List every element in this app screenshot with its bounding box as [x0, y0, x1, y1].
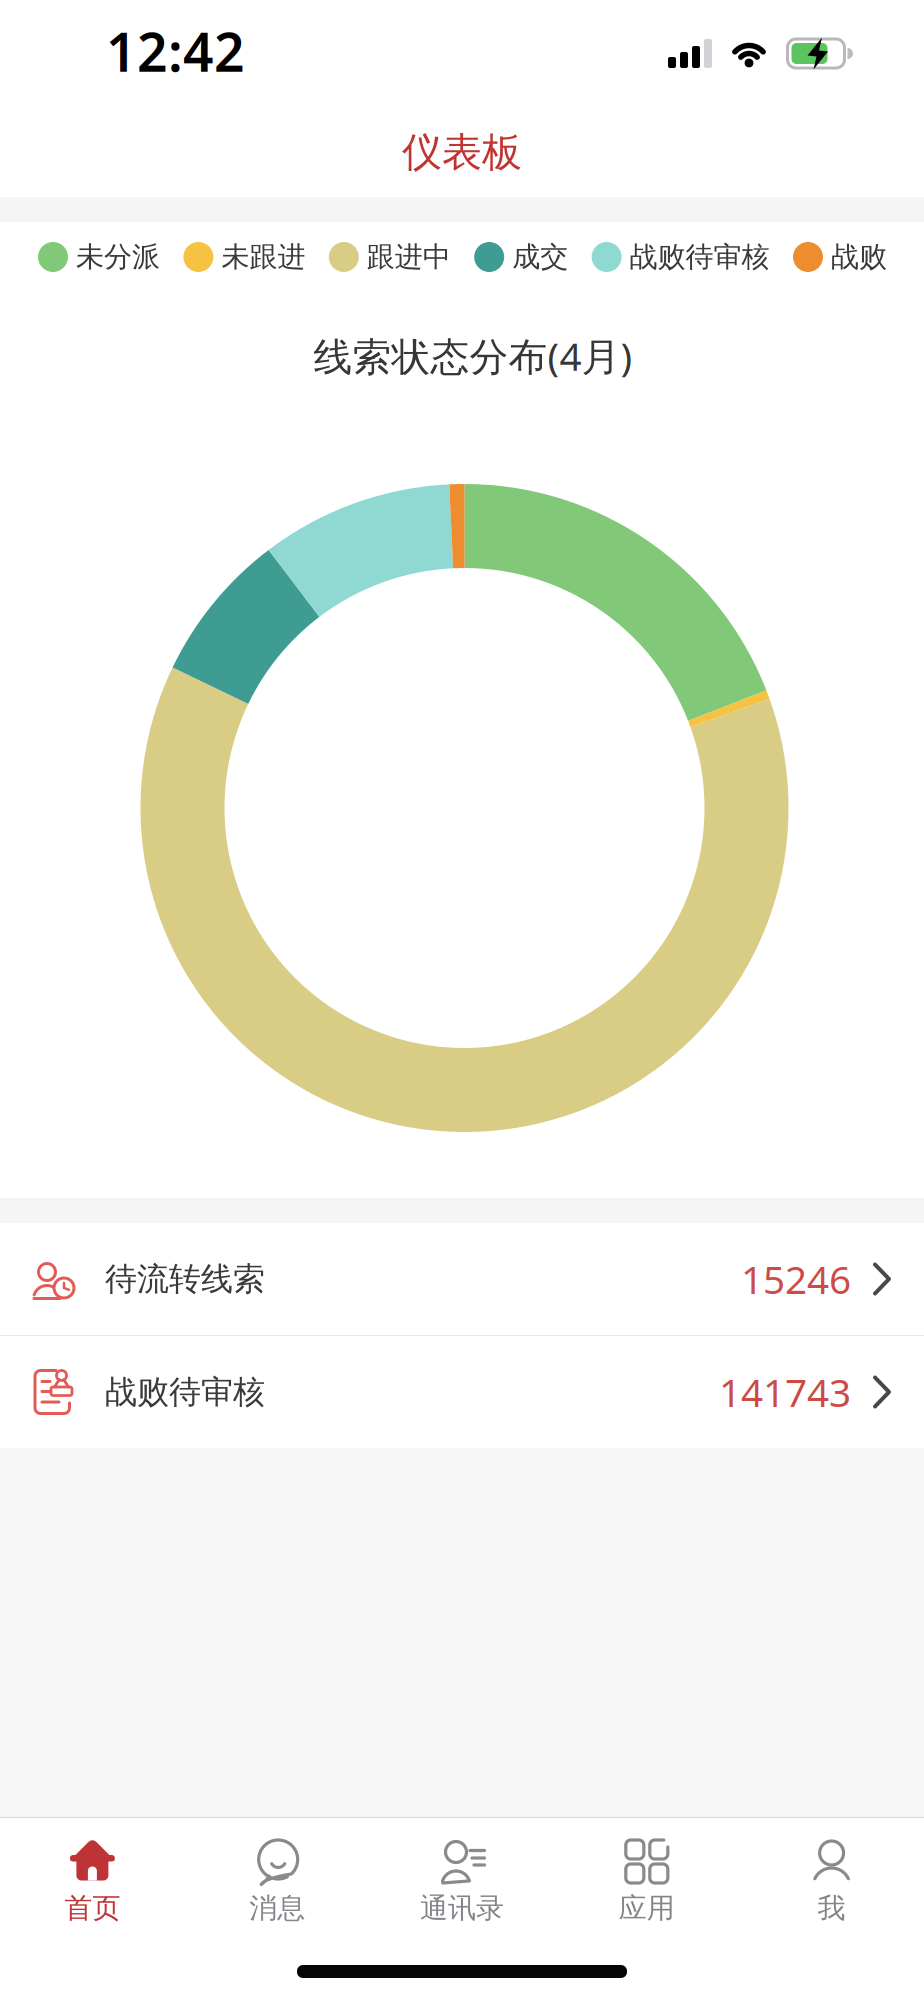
button[interactable]: 通讯录: [370, 1833, 554, 1943]
staticText: 15246: [741, 1253, 851, 1305]
staticText: 战败待审核: [630, 240, 770, 274]
button[interactable]: 待流转线索: [0, 1223, 924, 1335]
staticText: 未分派: [76, 240, 160, 274]
staticText: 线索状态分布(4月): [313, 330, 632, 381]
staticText: 成交: [512, 240, 568, 274]
button[interactable]: 我: [739, 1833, 924, 1943]
staticText: 消息: [249, 1891, 305, 1925]
staticText: 我: [818, 1891, 846, 1925]
staticText: 待流转线索: [105, 1259, 265, 1299]
staticText: 仪表板: [402, 128, 522, 177]
staticText: 12:42: [106, 16, 245, 86]
staticText: 应用: [619, 1891, 675, 1925]
staticText: 通讯录: [420, 1891, 504, 1925]
button[interactable]: 应用: [554, 1833, 739, 1943]
button[interactable]: 消息: [185, 1833, 370, 1943]
button[interactable]: 首页: [0, 1833, 185, 1943]
staticText: 战败: [831, 240, 887, 274]
staticText: 未跟进: [221, 240, 305, 274]
staticText: 141743: [719, 1366, 851, 1418]
staticText: 战败待审核: [105, 1372, 265, 1412]
staticText: 首页: [64, 1891, 120, 1925]
button[interactable]: 战败待审核: [0, 1336, 924, 1448]
staticText: 跟进中: [367, 240, 451, 274]
